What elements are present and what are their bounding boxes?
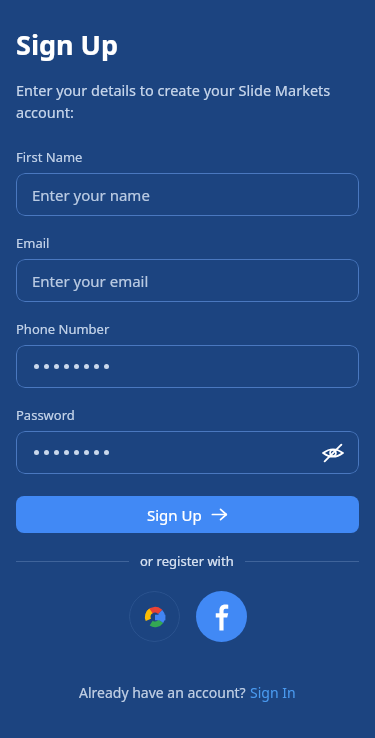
button[interactable]: Sign up with Facebook	[196, 591, 247, 642]
button[interactable]: Show password	[319, 439, 347, 467]
button[interactable]: Show password	[16, 431, 359, 474]
staticText: Already have an account?	[79, 683, 250, 702]
staticText: Password	[16, 406, 75, 424]
button[interactable]: Enter your email	[16, 259, 359, 302]
staticText: First Name	[16, 148, 83, 166]
staticText: Phone Number	[16, 320, 110, 338]
button[interactable]: Sign Up	[16, 496, 359, 533]
staticText: or register with	[140, 552, 234, 570]
button[interactable]	[16, 345, 359, 388]
staticText: Enter your details to create your Slide …	[16, 80, 359, 122]
staticText: Enter your name	[32, 185, 150, 205]
button[interactable]: Enter your name	[16, 173, 359, 216]
staticText: Sign In	[250, 683, 296, 702]
button[interactable]: Sign up with Google	[129, 591, 180, 642]
staticText: Enter your email	[32, 271, 149, 291]
button[interactable]: Already have an account?	[16, 677, 359, 708]
staticText: Email	[16, 234, 50, 252]
staticText: Sign Up	[147, 505, 202, 525]
staticText: Sign Up	[16, 26, 119, 63]
